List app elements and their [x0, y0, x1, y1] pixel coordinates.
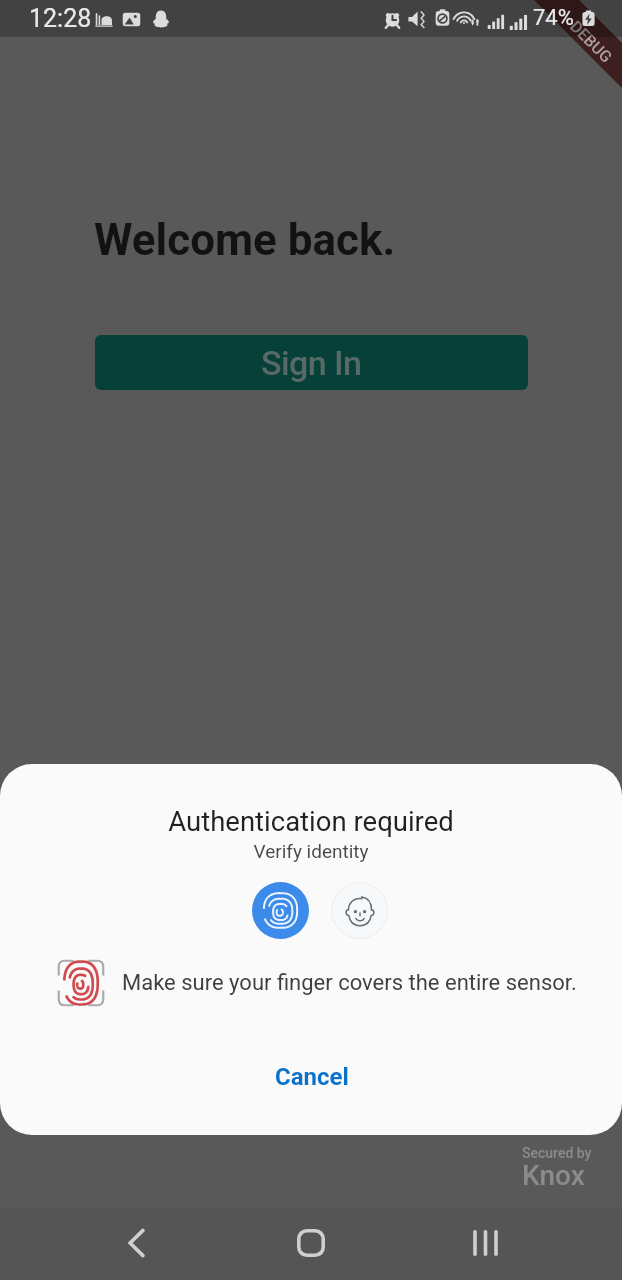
staticText: DEBUG	[566, 17, 616, 66]
staticText: Knox	[522, 1159, 585, 1192]
button[interactable]: Face unlock	[331, 882, 388, 939]
button[interactable]: Back	[79, 1207, 195, 1279]
staticText: Welcome back.	[94, 214, 396, 266]
staticText: 12:28	[29, 4, 92, 33]
staticText: Verify identity	[0, 840, 622, 862]
button[interactable]: Recent apps	[427, 1207, 543, 1279]
staticText: Sign In	[261, 343, 362, 383]
staticText: Secured by	[522, 1145, 592, 1161]
staticText: 74%	[533, 5, 574, 31]
button[interactable]: Cancel	[255, 1055, 369, 1099]
staticText: Make sure your finger covers the entire …	[122, 970, 577, 996]
button[interactable]: Sign In	[95, 335, 528, 390]
staticText: Cancel	[275, 1063, 349, 1091]
button[interactable]: Fingerprint	[252, 882, 309, 939]
staticText: Authentication required	[0, 805, 622, 837]
button[interactable]: Home	[253, 1207, 369, 1279]
